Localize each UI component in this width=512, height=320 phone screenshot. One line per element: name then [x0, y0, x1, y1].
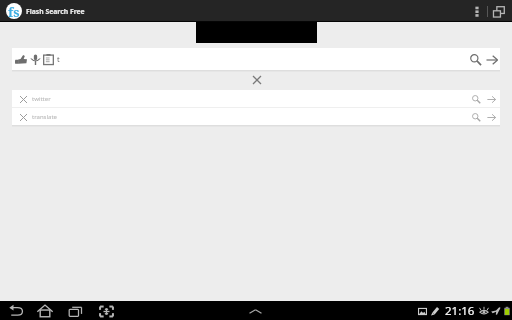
button[interactable]: Go	[484, 52, 499, 67]
staticText: Flash Search Free	[26, 7, 85, 16]
staticText: twitter	[32, 95, 51, 103]
staticText: fs	[8, 3, 20, 19]
button[interactable]: Home	[36, 302, 54, 320]
button[interactable]: Recent apps	[66, 302, 84, 320]
button[interactable]: Go	[485, 111, 497, 123]
button[interactable]: Paste from clipboard	[42, 53, 55, 66]
button[interactable]: Like	[12, 48, 500, 70]
button[interactable]: Search	[470, 93, 482, 105]
button[interactable]: Show navigation	[247, 303, 263, 319]
button[interactable]: Close	[249, 72, 264, 87]
button[interactable]: Remove twitter	[12, 90, 500, 107]
staticText: t	[57, 54, 60, 64]
staticText: 21:16	[445, 303, 475, 319]
button[interactable]: Remove translate	[17, 111, 29, 123]
button[interactable]: Voice search	[29, 53, 41, 65]
button[interactable]: Remove twitter	[17, 93, 29, 105]
button[interactable]: Like	[14, 53, 28, 67]
button[interactable]: Search	[470, 111, 482, 123]
button[interactable]: Remove translate	[12, 108, 500, 125]
button[interactable]: Restore window	[488, 1, 509, 22]
button[interactable]: Screenshot	[97, 302, 115, 320]
staticText: translate	[32, 113, 57, 121]
button[interactable]: Search	[468, 52, 483, 67]
button[interactable]: More options	[466, 1, 487, 22]
button[interactable]: Back	[7, 302, 24, 319]
button[interactable]: Go	[485, 93, 497, 105]
